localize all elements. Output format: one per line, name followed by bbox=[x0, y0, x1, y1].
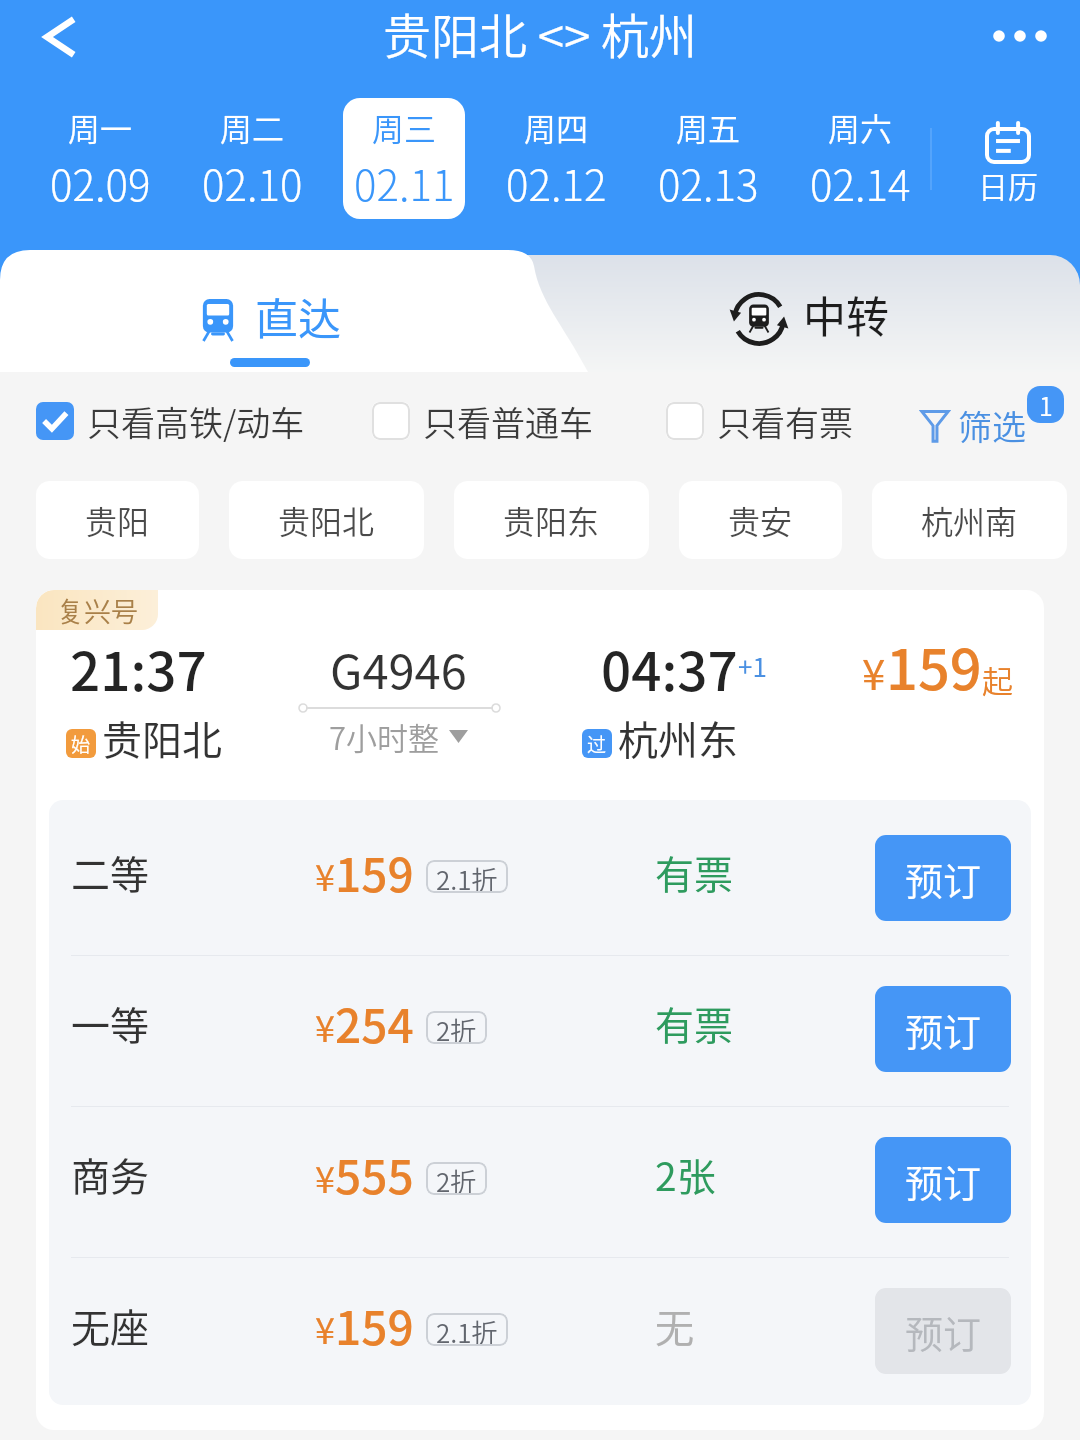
button[interactable]: 周五 bbox=[647, 98, 769, 219]
button[interactable]: 预订 bbox=[875, 835, 1011, 921]
staticText: 筛选 bbox=[958, 401, 1026, 450]
staticText: 贵阳 bbox=[85, 497, 150, 543]
button[interactable]: 贵安 bbox=[679, 481, 842, 559]
staticText: 2.1折 bbox=[436, 860, 498, 893]
staticText: 有票 bbox=[655, 844, 734, 900]
staticText: 只看高铁/动车 bbox=[87, 397, 305, 446]
staticText: 商务 bbox=[71, 1146, 150, 1202]
button[interactable]: More options bbox=[984, 0, 1056, 72]
button[interactable]: 日历 bbox=[945, 97, 1070, 232]
staticText: 02.13 bbox=[658, 152, 759, 213]
staticText: 贵阳北 <> 杭州 bbox=[383, 0, 698, 68]
button[interactable]: 只看高铁/动车 bbox=[36, 388, 305, 454]
button[interactable]: 直达 bbox=[0, 250, 540, 372]
staticText: 有票 bbox=[655, 995, 734, 1051]
staticText: G4946 bbox=[330, 634, 467, 702]
staticText: ¥ bbox=[315, 1151, 335, 1203]
staticText: 159 bbox=[335, 839, 414, 906]
button[interactable]: 中转 bbox=[540, 250, 1080, 372]
staticText: 7小时整 bbox=[329, 714, 440, 759]
staticText: 复兴号 bbox=[57, 591, 138, 630]
staticText: 无 bbox=[655, 1297, 695, 1353]
staticText: 无座 bbox=[71, 1297, 150, 1353]
staticText: ¥ bbox=[315, 849, 335, 901]
staticText: 预订 bbox=[905, 1304, 982, 1359]
staticText: 159 bbox=[886, 625, 982, 706]
staticText: ¥ bbox=[862, 641, 886, 702]
button[interactable]: 周三 bbox=[343, 98, 465, 219]
button[interactable]: 预订 bbox=[875, 1288, 1011, 1374]
button[interactable]: 贵阳东 bbox=[454, 481, 649, 559]
staticText: 02.12 bbox=[506, 152, 607, 213]
staticText: 二等 bbox=[71, 844, 150, 900]
staticText: 中转 bbox=[803, 283, 889, 345]
button[interactable]: 预订 bbox=[875, 986, 1011, 1072]
button[interactable] bbox=[0, 250, 588, 372]
staticText: 预订 bbox=[905, 1153, 982, 1208]
staticText: 贵阳东 bbox=[503, 497, 600, 543]
button[interactable]: 周一 bbox=[39, 98, 161, 219]
button[interactable]: 贵阳 bbox=[36, 481, 199, 559]
staticText: 2折 bbox=[436, 1011, 477, 1044]
staticText: 日历 bbox=[978, 163, 1038, 206]
staticText: 贵安 bbox=[728, 497, 793, 543]
staticText: 254 bbox=[335, 990, 414, 1057]
staticText: 02.14 bbox=[810, 152, 911, 213]
button[interactable]: 贵阳北 bbox=[229, 481, 424, 559]
staticText: 贵阳北 bbox=[278, 497, 375, 543]
staticText: ¥ bbox=[315, 1302, 335, 1354]
staticText: 02.10 bbox=[202, 152, 303, 213]
staticText: 预订 bbox=[905, 1002, 982, 1057]
staticText: 预订 bbox=[905, 851, 982, 906]
staticText: 直达 bbox=[255, 285, 341, 347]
staticText: 周五 bbox=[676, 104, 741, 150]
staticText: 21:37 bbox=[70, 630, 207, 707]
button[interactable]: 只看普通车 bbox=[372, 388, 593, 454]
staticText: 周一 bbox=[68, 104, 133, 150]
staticText: 1 bbox=[1039, 387, 1053, 423]
staticText: 始 bbox=[71, 730, 91, 758]
staticText: 2折 bbox=[436, 1162, 477, 1195]
staticText: 2张 bbox=[655, 1146, 716, 1202]
staticText: 贵阳北 bbox=[102, 709, 222, 767]
staticText: 2.1折 bbox=[436, 1313, 498, 1346]
button[interactable]: 筛选 bbox=[921, 396, 1026, 454]
staticText: 只看有票 bbox=[717, 397, 853, 446]
staticText: 555 bbox=[335, 1141, 414, 1208]
staticText: 周二 bbox=[220, 104, 285, 150]
button[interactable]: Back bbox=[6, 0, 106, 72]
button[interactable]: 杭州南 bbox=[872, 481, 1067, 559]
staticText: 周六 bbox=[828, 104, 893, 150]
button[interactable]: 预订 bbox=[875, 1137, 1011, 1223]
staticText: +1 bbox=[738, 647, 767, 685]
staticText: 周三 bbox=[372, 104, 437, 150]
staticText: 杭州南 bbox=[921, 497, 1018, 543]
staticText: 只看普通车 bbox=[423, 397, 593, 446]
staticText: 一等 bbox=[71, 995, 150, 1051]
staticText: 02.11 bbox=[354, 152, 455, 213]
button[interactable]: 周四 bbox=[495, 98, 617, 219]
staticText: 周四 bbox=[524, 104, 589, 150]
staticText: 过 bbox=[587, 730, 607, 758]
button[interactable]: 只看有票 bbox=[666, 388, 853, 454]
staticText: 04:37 bbox=[601, 630, 738, 707]
staticText: 159 bbox=[335, 1292, 414, 1359]
button[interactable]: 周六 bbox=[799, 98, 921, 219]
staticText: ¥ bbox=[315, 1000, 335, 1052]
button[interactable]: 周二 bbox=[191, 98, 313, 219]
staticText: 02.09 bbox=[50, 152, 151, 213]
staticText: 杭州东 bbox=[618, 709, 738, 767]
staticText: 起 bbox=[982, 657, 1013, 702]
